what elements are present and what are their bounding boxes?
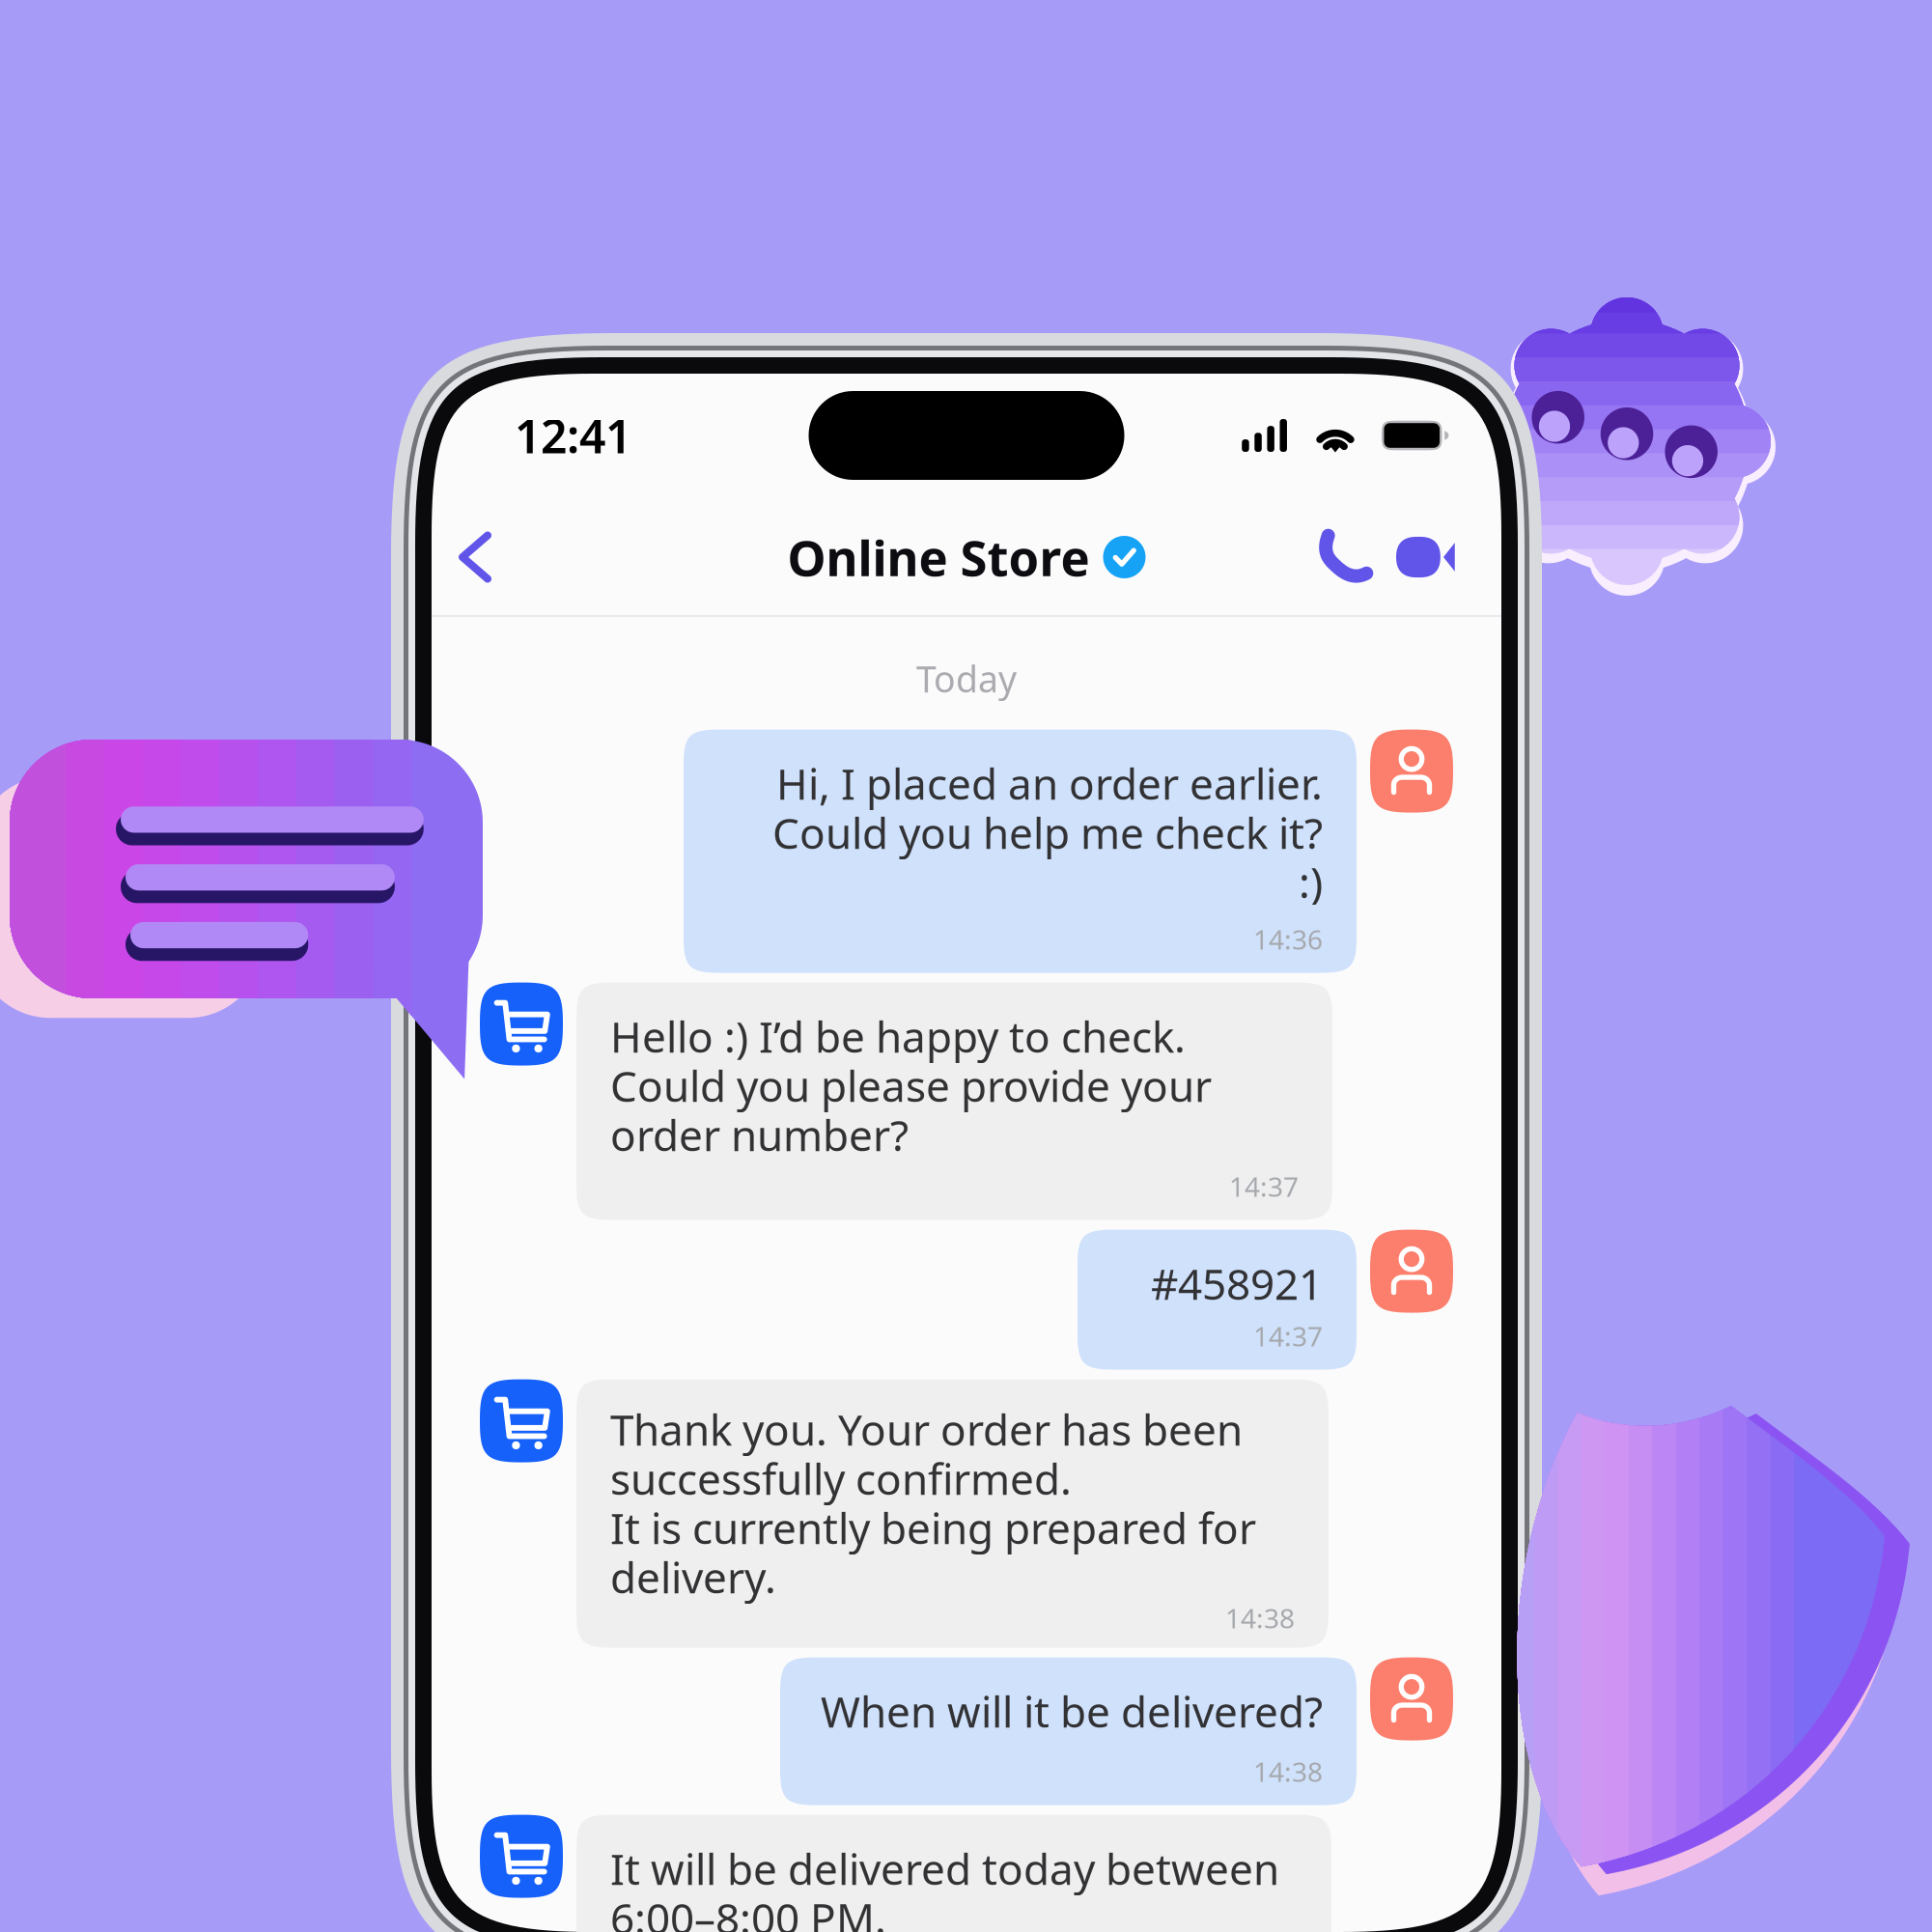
staticText: It will be delivered today between [610,1840,1279,1897]
staticText: Today [916,655,1017,703]
staticText: successfully confirmed. [610,1450,1072,1506]
staticText: Thank you. Your order has been [610,1401,1243,1457]
staticText: Online Store [787,525,1090,590]
staticText: delivery. [610,1549,776,1605]
staticText: 14:38 [1225,1600,1295,1636]
staticText: 6:00–8:00 PM. [610,1889,886,1932]
button[interactable]: Back [439,509,511,605]
staticText: #458921 [1151,1255,1323,1311]
staticText: It is currently being prepared for [610,1499,1256,1556]
staticText: Could you help me check it? [772,804,1323,861]
staticText: 12:41 [515,405,631,466]
staticText: 14:37 [1229,1168,1299,1204]
button[interactable]: Call [1304,509,1386,605]
staticText: 14:37 [1253,1318,1323,1354]
staticText: order number? [610,1106,909,1163]
staticText: Could you please provide your [610,1057,1212,1114]
staticText: Hi, I placed an order earlier. [776,755,1323,811]
staticText: Hello :) I’d be happy to check. [610,1008,1186,1064]
staticText: When will it be delivered? [821,1683,1323,1739]
button[interactable]: Video call [1386,509,1467,605]
staticText: :) [1299,853,1323,910]
staticText: 14:38 [1253,1753,1323,1789]
staticText: 14:36 [1253,921,1323,957]
